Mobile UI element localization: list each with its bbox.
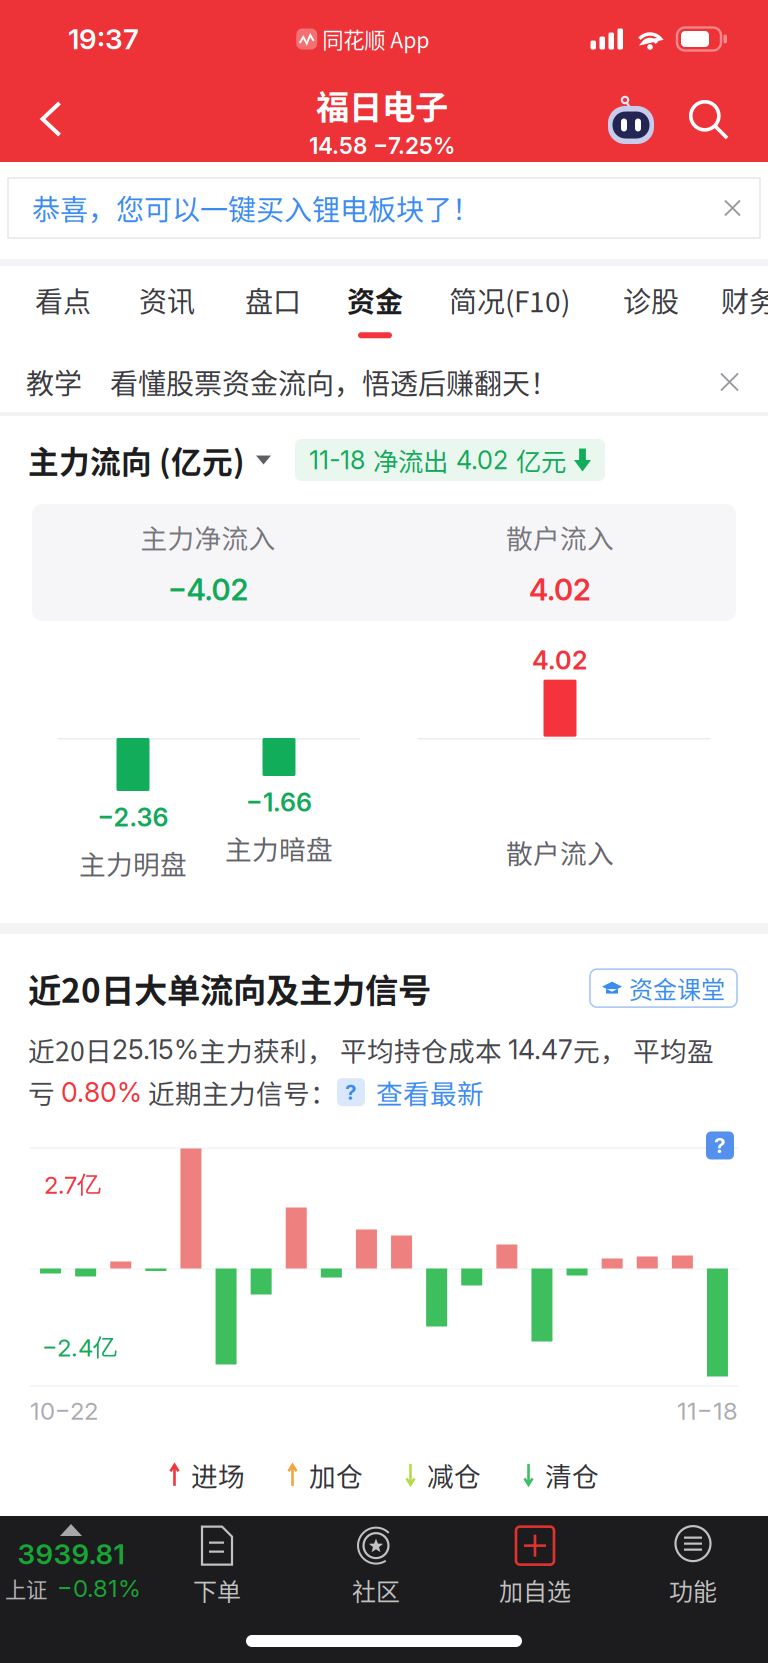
staticText: 资金课堂	[629, 971, 725, 1006]
staticText: 元，	[573, 1030, 627, 1069]
staticText: −0.81%	[57, 1574, 141, 1603]
staticText: 加自选	[499, 1573, 571, 1607]
staticText: 4.02	[529, 572, 591, 608]
staticText: 25.15%	[112, 1033, 199, 1066]
staticText: 亿元	[516, 442, 566, 478]
button[interactable]: 资金	[301, 266, 403, 352]
staticText: 0.80%	[61, 1076, 142, 1108]
staticText: 10−22	[30, 1396, 98, 1425]
staticText: 下单	[193, 1573, 241, 1607]
button[interactable]: ?	[337, 1073, 484, 1111]
button[interactable]: 3939.81	[0, 1516, 138, 1606]
staticText: 福日电子	[316, 81, 448, 129]
staticText: 资讯	[139, 280, 195, 320]
button[interactable]: 盘口	[195, 266, 301, 352]
staticText: 4.02	[456, 445, 508, 475]
staticText: 财务	[721, 280, 768, 320]
staticText: 恭喜，您可以一键买入锂电板块了！	[32, 188, 480, 228]
staticText: 近期主力信号：	[142, 1073, 337, 1111]
staticText: 同花顺 App	[322, 24, 429, 54]
staticText: −2.4亿	[42, 1332, 117, 1362]
staticText: 近20日	[28, 1030, 112, 1069]
staticText: 4.02	[532, 645, 588, 676]
button[interactable]: 财务	[679, 266, 768, 352]
staticText: 散户流入	[506, 833, 614, 871]
staticText: ?	[714, 1133, 726, 1158]
staticText: 14.58 −7.25%	[309, 132, 455, 159]
staticText: 亏	[28, 1073, 61, 1111]
button[interactable]: 看点	[0, 266, 91, 352]
button[interactable]: 诊股	[570, 266, 679, 352]
button[interactable]: 返回	[0, 78, 102, 162]
staticText: 盘口	[245, 280, 301, 320]
button[interactable]: 简况(F10)	[403, 266, 570, 352]
staticText: −4.02	[167, 572, 248, 608]
button[interactable]: 说明	[706, 1131, 734, 1159]
staticText: 14.47	[508, 1033, 573, 1066]
button[interactable]: 社区	[296, 1516, 456, 1606]
staticText: 清仓	[545, 1455, 599, 1494]
staticText: 看懂股票资金流向，悟透后赚翻天！	[110, 362, 558, 402]
staticText: 资金	[347, 280, 403, 320]
staticText: 看点	[35, 280, 91, 320]
staticText: 主力明盘	[79, 844, 187, 882]
button[interactable]: 资金课堂	[590, 969, 768, 1007]
staticText: 19:37	[68, 22, 139, 56]
button[interactable]: 资讯	[91, 266, 195, 352]
button[interactable]: 主力流向 (亿元)	[0, 438, 271, 482]
staticText: 查看最新	[376, 1073, 484, 1111]
staticText: 加仓	[309, 1455, 363, 1494]
staticText: 上证	[5, 1573, 47, 1604]
staticText: 3939.81	[17, 1537, 124, 1571]
staticText: 社区	[352, 1573, 400, 1607]
button[interactable]: 功能	[614, 1516, 768, 1606]
staticText: 简况(F10)	[449, 280, 570, 320]
staticText: 主力获利，	[199, 1030, 334, 1069]
staticText: 主力暗盘	[225, 829, 333, 867]
staticText: −2.36	[97, 802, 168, 833]
staticText: 主力净流入	[140, 517, 275, 556]
staticText: 平均持仓成本	[334, 1030, 508, 1069]
button[interactable]: 智能助手	[592, 78, 670, 162]
button[interactable]: 下单	[138, 1516, 296, 1606]
staticText: 教学	[26, 362, 82, 402]
staticText: 诊股	[623, 280, 679, 320]
staticText: 散户流入	[506, 517, 614, 556]
button[interactable]: 恭喜，您可以一键买入锂电板块了！	[0, 162, 768, 259]
staticText: 功能	[669, 1573, 717, 1607]
staticText: −1.66	[246, 787, 312, 818]
staticText: 近20日大单流向及主力信号	[28, 964, 431, 1012]
staticText: 平均盈	[627, 1030, 714, 1069]
staticText: 11−18	[677, 1396, 738, 1425]
staticText: 进场	[191, 1455, 245, 1494]
button[interactable]: 加自选	[456, 1516, 614, 1606]
staticText: 2.7亿	[44, 1169, 101, 1200]
staticText: 减仓	[427, 1455, 481, 1494]
staticText: 11-18	[309, 445, 365, 475]
staticText: ?	[345, 1080, 357, 1105]
staticText: 净流出	[373, 442, 448, 478]
staticText: 主力流向 (亿元)	[28, 438, 245, 482]
button[interactable]: 搜索	[670, 78, 748, 162]
button[interactable]: 关闭	[721, 351, 768, 412]
